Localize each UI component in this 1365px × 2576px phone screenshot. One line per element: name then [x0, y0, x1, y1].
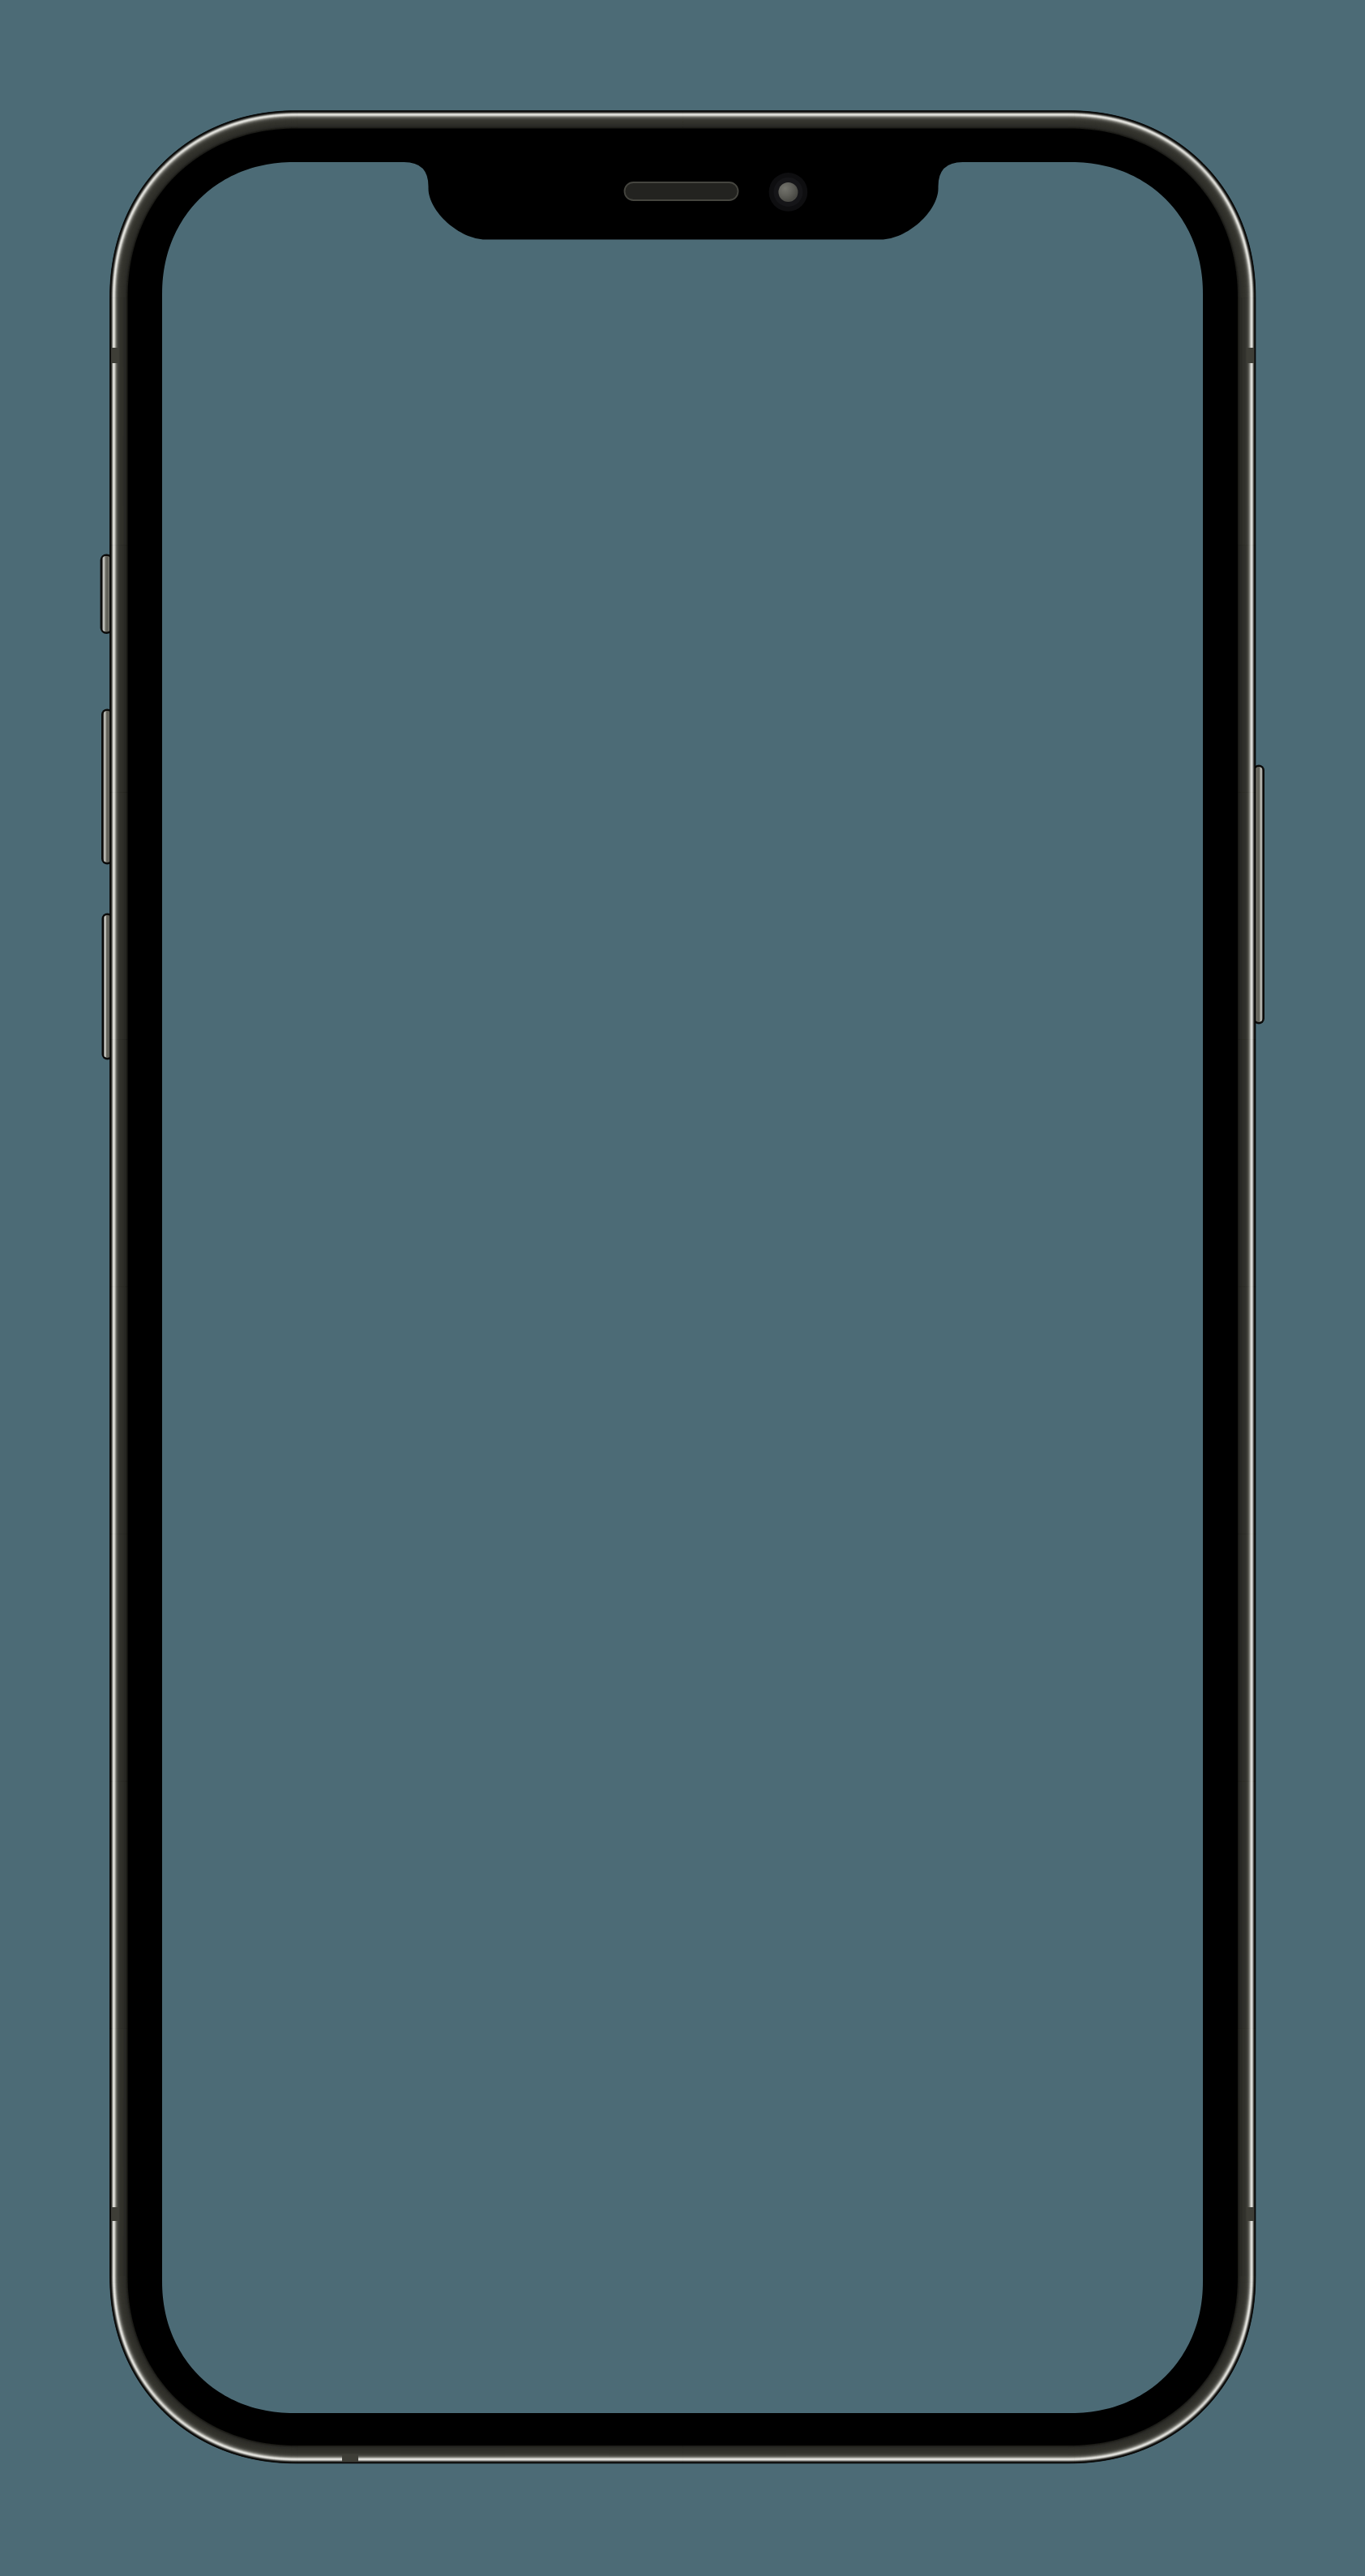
button[interactable]: Phone device mockup screen — [0, 0, 1365, 2576]
button[interactable]: Volume up — [96, 711, 118, 862]
button[interactable]: Ring silent switch — [96, 556, 118, 632]
button[interactable]: Volume down — [96, 915, 118, 1058]
button[interactable]: Side power button — [1248, 767, 1269, 1022]
